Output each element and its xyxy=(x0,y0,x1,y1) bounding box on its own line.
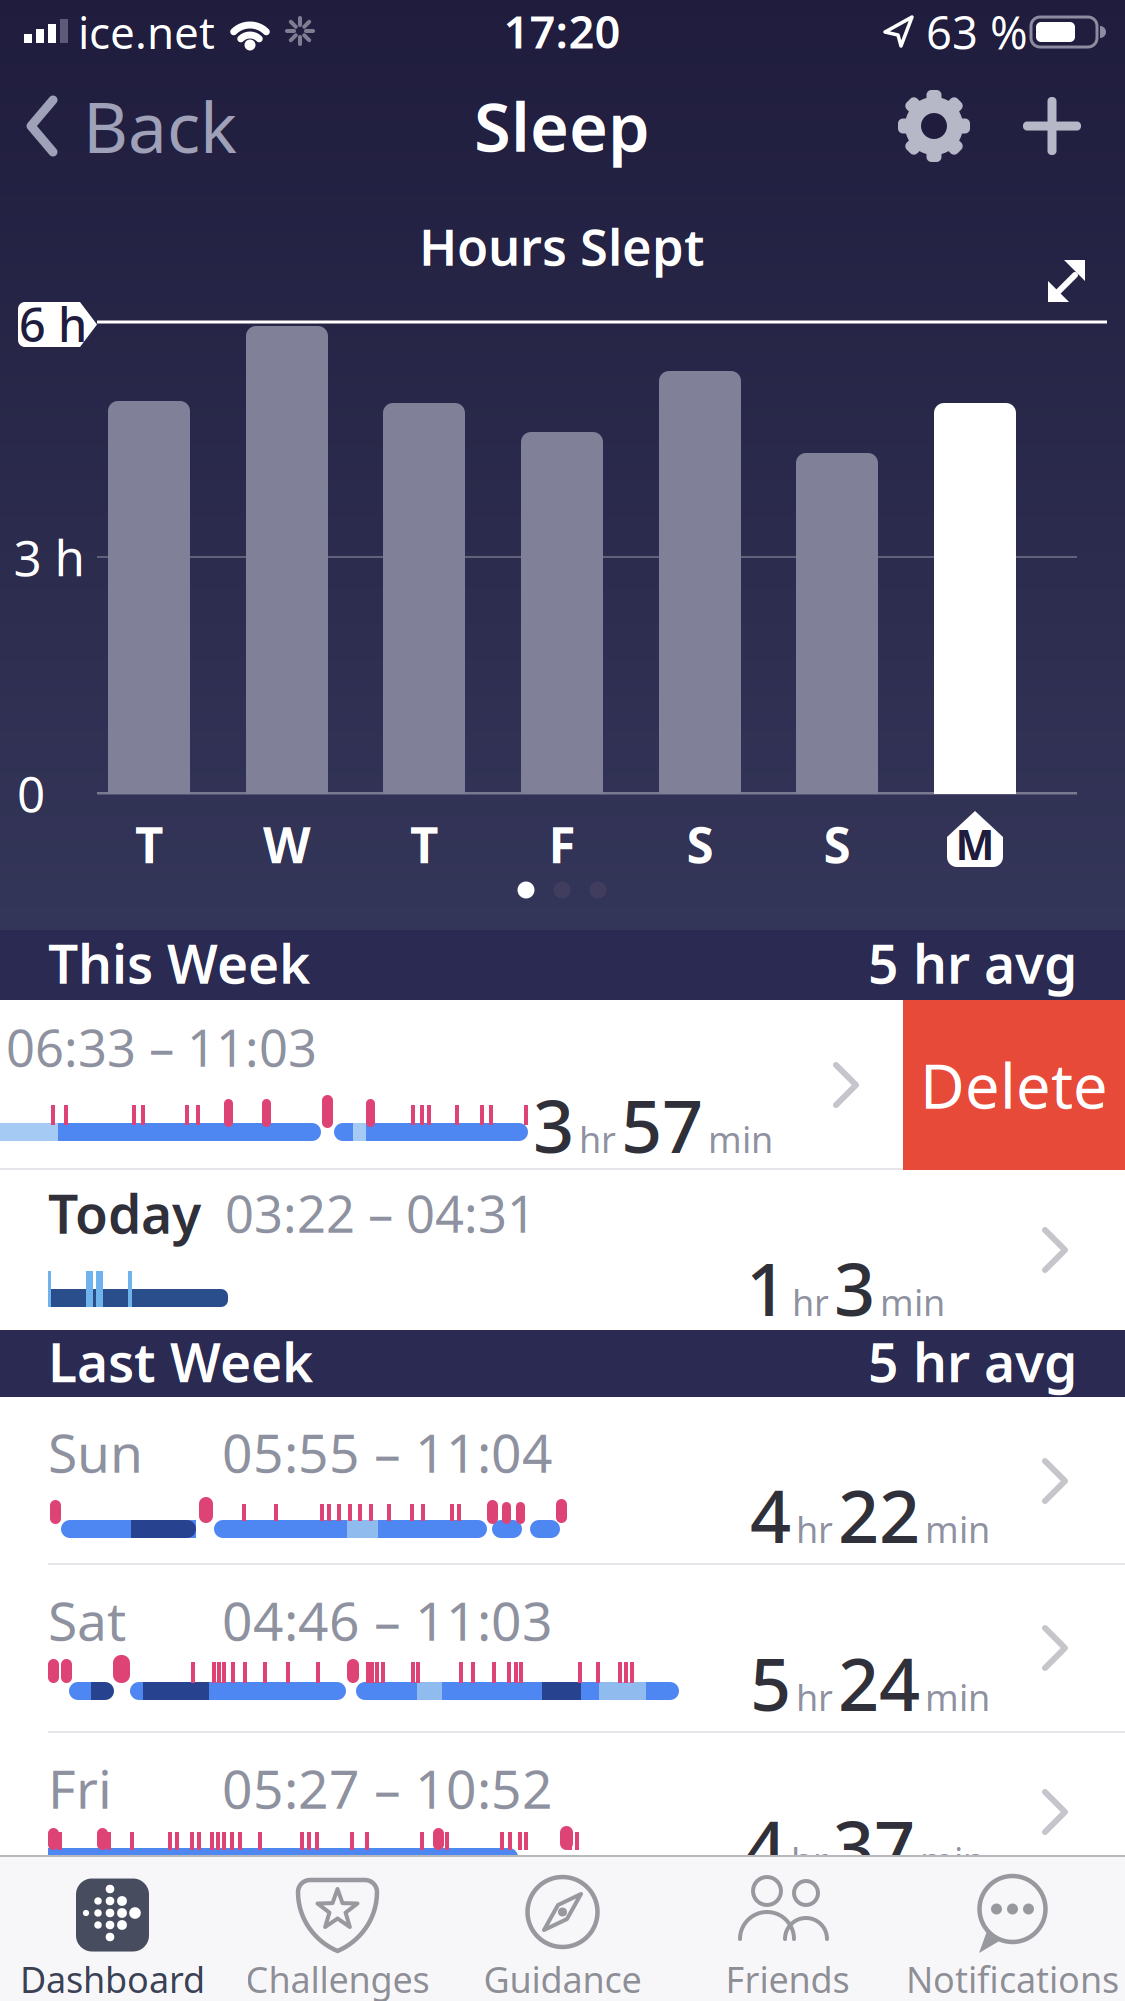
staticText: T xyxy=(135,811,163,877)
button[interactable] xyxy=(1012,86,1092,166)
button[interactable]: Back xyxy=(27,71,307,181)
button[interactable] xyxy=(1031,246,1101,316)
staticText: 22 xyxy=(838,1467,920,1563)
staticText: S xyxy=(823,811,850,877)
button[interactable]: Notifications xyxy=(900,1857,1125,2001)
staticText: S xyxy=(686,811,713,877)
staticText: Sun xyxy=(48,1417,143,1487)
staticText: F xyxy=(548,811,575,877)
button[interactable]: Delete xyxy=(903,1000,1125,1170)
staticText: 05:55 – 11:04 xyxy=(222,1417,553,1487)
staticText: 4 xyxy=(750,1467,791,1563)
staticText: Sleep xyxy=(474,82,650,170)
staticText: 1 xyxy=(746,1240,787,1336)
staticText: 04:46 – 11:03 xyxy=(222,1585,553,1655)
staticText: 06:33 – 11:03 xyxy=(6,1013,317,1081)
button[interactable]: 06:33 – 11:03 xyxy=(0,1000,903,1168)
staticText: 37 xyxy=(833,1798,915,1894)
button[interactable]: Sat xyxy=(0,1565,1125,1733)
staticText: Notifications xyxy=(906,1955,1119,2001)
staticText: Dashboard xyxy=(20,1955,205,2001)
staticText: 4 xyxy=(745,1798,786,1894)
staticText: 05:27 – 10:52 xyxy=(222,1753,553,1823)
staticText: Guidance xyxy=(483,1955,641,2001)
staticText: 5 hr avg xyxy=(868,1326,1077,1397)
staticText: Sat xyxy=(48,1585,126,1655)
staticText: M xyxy=(955,817,994,871)
staticText: hr xyxy=(796,1673,833,1721)
staticText: 3 xyxy=(834,1240,875,1336)
button[interactable]: Friends xyxy=(675,1857,900,2001)
button[interactable]: Today xyxy=(0,1170,1125,1330)
button[interactable]: Guidance xyxy=(450,1857,675,2001)
staticText: Friends xyxy=(725,1955,849,2001)
staticText: 0 xyxy=(17,760,45,826)
staticText: Challenges xyxy=(245,1955,429,2001)
staticText: min xyxy=(925,1505,990,1553)
button[interactable]: Fri xyxy=(0,1733,1125,1877)
staticText: 17:20 xyxy=(503,1,620,61)
staticText: min xyxy=(880,1278,945,1326)
staticText: hr xyxy=(791,1836,828,1884)
staticText: hr xyxy=(579,1115,616,1163)
staticText: Fri xyxy=(48,1753,112,1823)
button[interactable]: Dashboard xyxy=(0,1857,225,2001)
staticText: 63 % xyxy=(926,2,1028,62)
staticText: 5 hr avg xyxy=(868,928,1077,998)
staticText: 5 xyxy=(750,1635,791,1731)
staticText: 03:22 – 04:31 xyxy=(225,1179,536,1247)
staticText: Today xyxy=(48,1178,201,1248)
staticText: 3 h xyxy=(13,524,84,590)
staticText: 6 h xyxy=(19,293,87,355)
staticText: hr xyxy=(796,1505,833,1553)
staticText: 24 xyxy=(838,1635,920,1731)
button[interactable] xyxy=(889,81,979,171)
staticText: hr xyxy=(792,1278,829,1326)
staticText: Back xyxy=(83,80,237,172)
staticText: Delete xyxy=(920,1044,1108,1126)
staticText: min xyxy=(920,1836,985,1884)
staticText: Last Week xyxy=(48,1326,313,1397)
staticText: This Week xyxy=(48,928,310,998)
staticText: 57 xyxy=(621,1077,703,1173)
button[interactable]: Sun xyxy=(0,1397,1125,1565)
staticText: min xyxy=(708,1115,773,1163)
staticText: W xyxy=(263,811,311,877)
staticText: 3 xyxy=(533,1077,574,1173)
staticText: Hours Slept xyxy=(419,212,705,280)
staticText: T xyxy=(410,811,438,877)
button[interactable]: Challenges xyxy=(225,1857,450,2001)
staticText: min xyxy=(925,1673,990,1721)
staticText: ice.net xyxy=(78,3,215,61)
